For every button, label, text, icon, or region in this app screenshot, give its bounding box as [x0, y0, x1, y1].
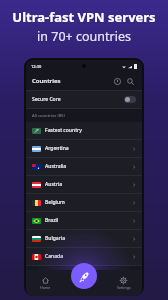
staticText: Belgium: [45, 199, 65, 206]
button[interactable]: Search: [125, 76, 136, 87]
button[interactable]: Bulgaria: [26, 230, 142, 247]
button[interactable]: Austria: [26, 176, 142, 193]
button[interactable]: Connect: [71, 263, 97, 289]
button[interactable]: Home: [26, 276, 64, 291]
button[interactable]: Brazil: [26, 212, 142, 229]
staticText: Canada: [45, 253, 63, 260]
staticText: Argentina: [45, 145, 69, 152]
staticText: Bulgaria: [45, 235, 66, 242]
button[interactable]: Secure Core: [26, 91, 142, 108]
staticText: Brazil: [45, 217, 59, 224]
staticText: Settings: [117, 285, 131, 290]
staticText: Fastest country: [45, 127, 82, 134]
staticText: All countries (85): [32, 113, 65, 119]
staticText: Austria: [45, 181, 63, 188]
staticText: in 70+ countries: [37, 28, 131, 45]
button[interactable]: Info: [112, 76, 123, 87]
button[interactable]: Settings: [105, 276, 142, 291]
staticText: Secure Core: [32, 96, 61, 103]
button[interactable]: Fastest country: [26, 122, 142, 139]
button[interactable]: Australia: [26, 158, 142, 175]
staticText: 12:30: [31, 64, 42, 69]
button[interactable]: Canada: [26, 248, 142, 265]
button[interactable]: Argentina: [26, 140, 142, 157]
staticText: Home: [40, 285, 51, 290]
button[interactable]: Belgium: [26, 194, 142, 211]
staticText: Ultra-fast VPN servers: [12, 8, 156, 26]
staticText: Countries: [32, 77, 61, 85]
staticText: Australia: [45, 163, 67, 170]
